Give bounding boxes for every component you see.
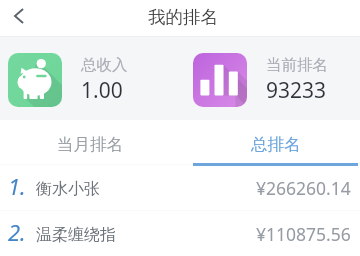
staticText: 总收入 [81,55,128,75]
button[interactable]: 当前排名 [193,53,309,107]
staticText: 衡水小张 [36,179,100,199]
staticText: 总排名 [251,134,301,155]
button[interactable]: Back [0,0,36,36]
button[interactable]: 1. [0,165,360,211]
button[interactable]: 总收入 [8,53,109,107]
staticText: 1. [8,171,26,201]
button[interactable]: 当月排名 [0,120,180,165]
button[interactable]: 2. [0,211,360,256]
staticText: 当月排名 [57,134,123,155]
staticText: 1.00 [81,76,123,105]
staticText: 93233 [266,76,327,105]
staticText: 当前排名 [266,55,328,75]
staticText: 温柔缠绕指 [36,225,116,245]
staticText: ¥266260.14 [256,176,351,200]
button[interactable]: 总排名 [193,120,358,165]
staticText: 2. [8,217,26,247]
staticText: 我的排名 [148,6,218,28]
staticText: ¥110875.56 [256,222,351,246]
